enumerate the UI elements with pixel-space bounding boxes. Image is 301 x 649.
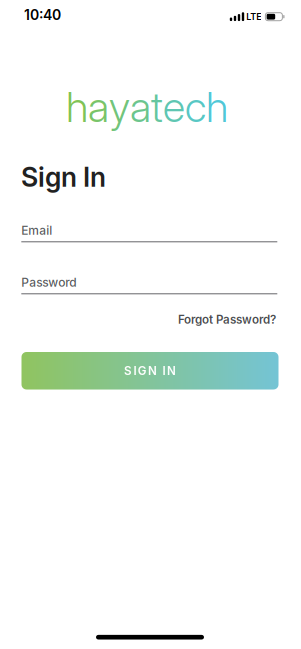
button[interactable]: SIGN IN (0, 352, 300, 389)
staticText: Email (21, 223, 52, 237)
staticText: e (163, 82, 185, 132)
button[interactable]: Password (21, 275, 277, 294)
staticText: c (185, 82, 206, 132)
button[interactable]: Email (21, 223, 277, 242)
staticText: y (109, 82, 130, 132)
staticText: LTE (246, 11, 261, 22)
staticText: 10:40 (24, 6, 61, 23)
staticText: h (206, 82, 228, 132)
staticText: h (66, 82, 88, 132)
staticText: Forgot Password? (178, 312, 276, 326)
staticText: Password (21, 275, 76, 289)
staticText: a (88, 82, 109, 132)
staticText: t (151, 82, 163, 132)
staticText: a (130, 82, 151, 132)
button[interactable]: Forgot Password? (178, 312, 276, 326)
staticText: SIGN IN (124, 364, 176, 378)
staticText: Sign In (21, 161, 106, 193)
